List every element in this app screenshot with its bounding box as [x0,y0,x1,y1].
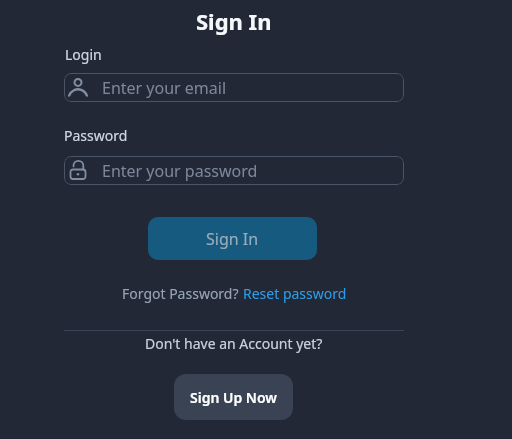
staticText: Enter your password [102,160,258,182]
staticText: Login [65,45,102,64]
button[interactable]: Sign Up Now [174,374,293,420]
staticText: Enter your email [102,77,227,99]
staticText: Sign Up Now [190,388,277,407]
button[interactable]: Sign In [148,217,317,260]
staticText: Password [64,126,128,145]
staticText: Sign In [196,6,272,36]
staticText: Don't have an Account yet? [145,334,323,353]
button[interactable]: Reset password [243,284,347,303]
staticText: Sign In [206,228,259,250]
staticText: Forgot Password? [122,284,243,303]
button[interactable]: Enter your password [64,156,404,185]
button[interactable]: Enter your email [64,73,404,102]
